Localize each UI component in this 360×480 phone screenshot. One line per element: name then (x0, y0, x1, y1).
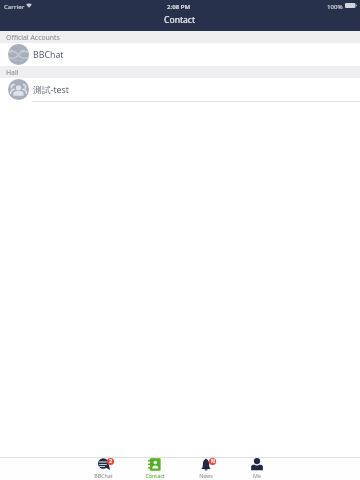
staticText: News (199, 472, 213, 479)
staticText: Official Accounts (6, 33, 60, 42)
button[interactable]: BBChat (78, 457, 129, 480)
staticText: Me (253, 472, 261, 479)
staticText: Contact (145, 472, 165, 479)
staticText: 2:08 PM (167, 2, 191, 10)
staticText: N (211, 458, 215, 465)
other: News (201, 458, 211, 471)
staticText: Carrier (4, 2, 25, 10)
staticText: 測試-test (33, 84, 69, 96)
staticText: 100% (327, 2, 343, 10)
other: Me (251, 458, 263, 471)
button[interactable]: Me (231, 457, 282, 480)
other: BBChat (98, 458, 110, 471)
button[interactable]: News (180, 457, 231, 480)
staticText: BBChat (94, 472, 113, 479)
button[interactable]: BBChat (0, 43, 360, 66)
other: Contact (148, 458, 161, 471)
staticText: Hall (6, 68, 19, 77)
staticText: 2 (109, 458, 112, 465)
button[interactable]: 測試-test (0, 78, 360, 101)
button[interactable]: Contact (129, 457, 180, 480)
staticText: Contact (164, 14, 196, 26)
staticText: BBChat (33, 49, 64, 61)
